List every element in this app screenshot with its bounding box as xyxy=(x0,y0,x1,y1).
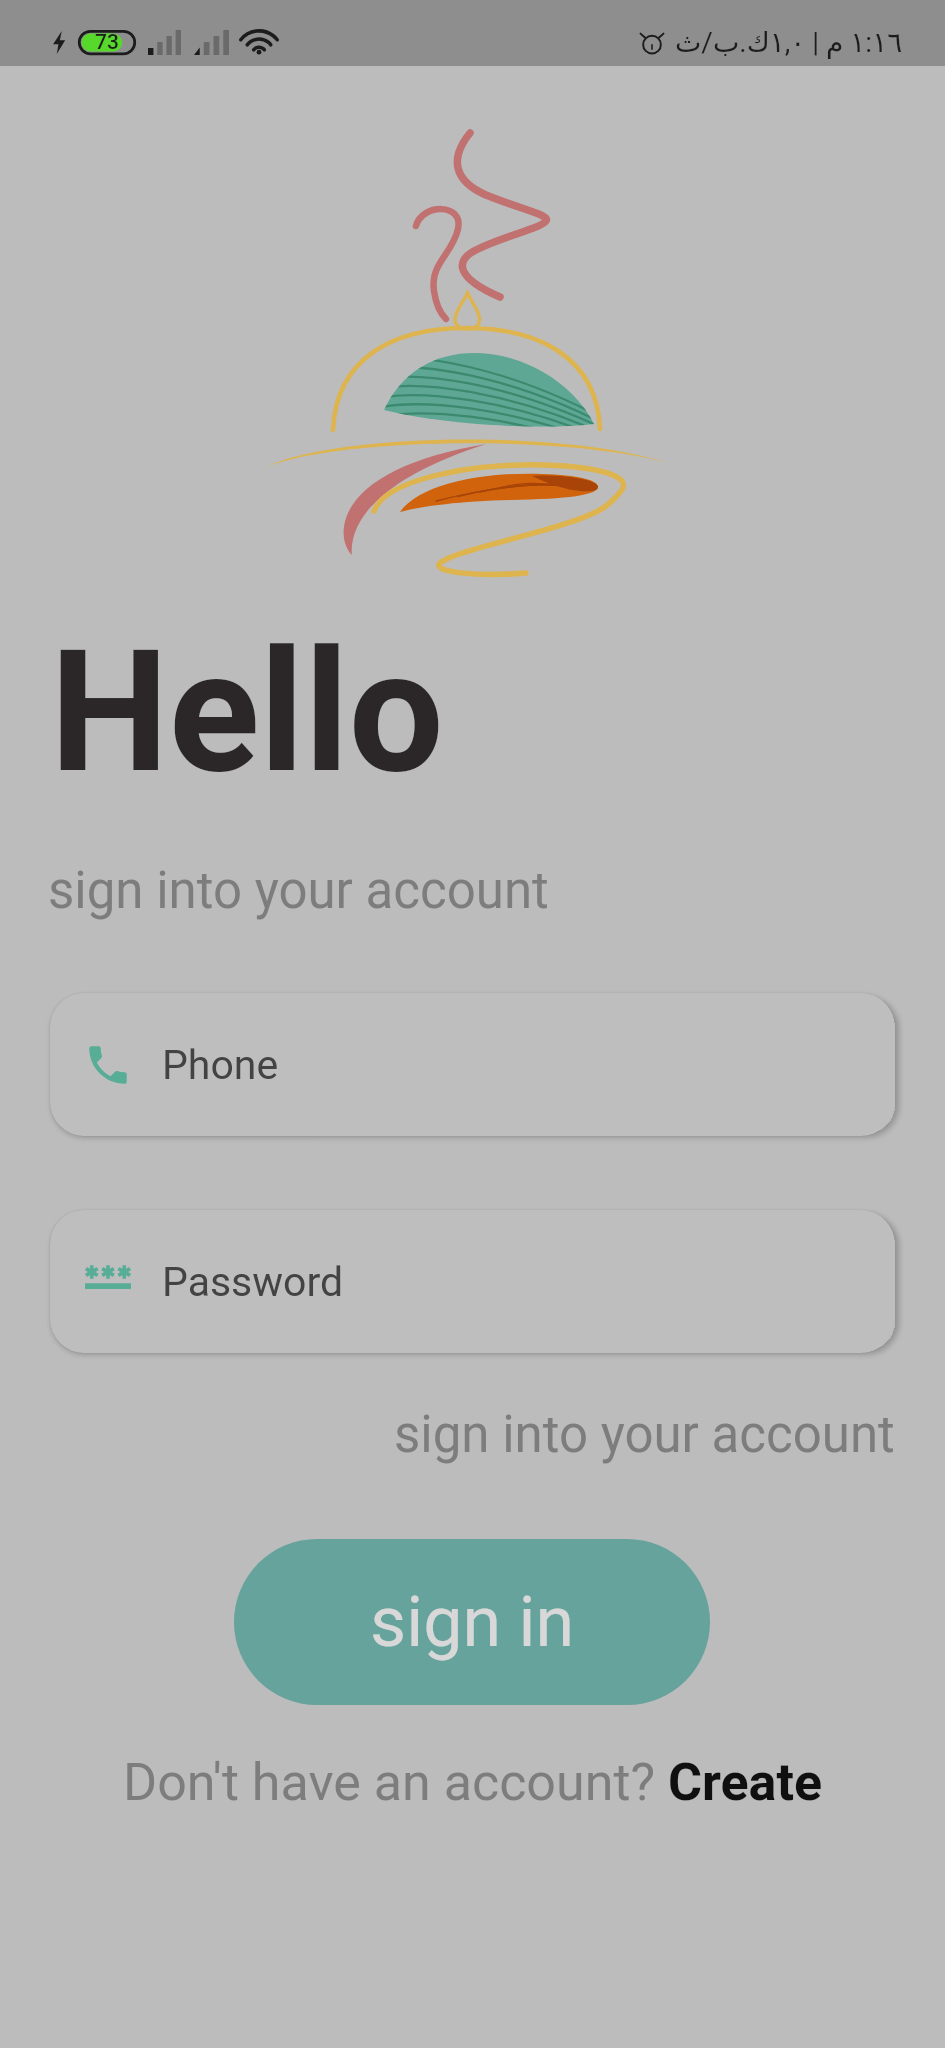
staticText: sign into your account xyxy=(394,1405,895,1465)
button[interactable]: sign in xyxy=(234,1539,710,1705)
staticText: sign in xyxy=(370,1581,575,1663)
button[interactable]: Phone xyxy=(50,993,895,1136)
staticText: ١:١٦ م | ١,٠ك.ب/ث xyxy=(675,26,903,59)
button[interactable]: sign into your account xyxy=(392,1403,897,1467)
staticText: Don't have an account? Create xyxy=(123,1752,823,1813)
staticText: Hello xyxy=(50,614,444,811)
button[interactable]: Password xyxy=(50,1210,895,1353)
staticText: sign into your account xyxy=(48,861,549,921)
staticText: 73 xyxy=(95,30,119,55)
staticText: Phone xyxy=(162,1041,279,1089)
staticText: Password xyxy=(162,1258,344,1306)
button[interactable]: Don't have an account? Create xyxy=(123,1752,823,1813)
